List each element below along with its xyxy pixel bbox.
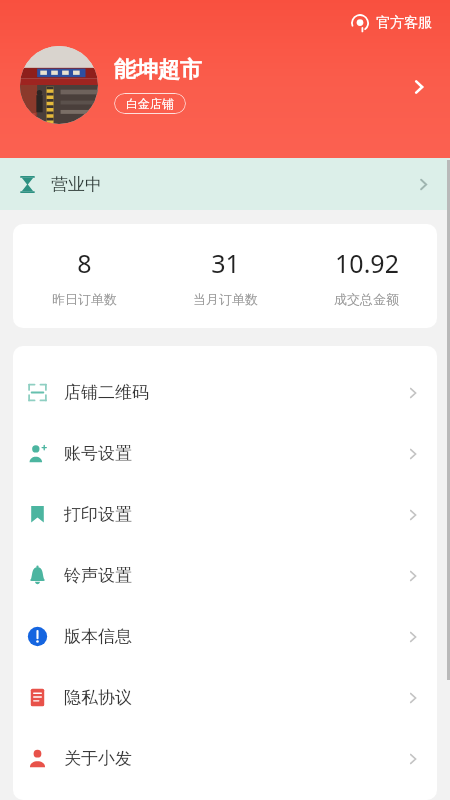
staticText: 关于小发	[64, 748, 132, 769]
staticText: 昨日订单数	[52, 291, 117, 307]
staticText: 官方客服	[376, 14, 432, 32]
staticText: 10.92	[335, 246, 399, 280]
button[interactable]: 隐私协议	[13, 667, 437, 728]
button[interactable]: 版本信息	[13, 606, 437, 667]
button[interactable]: 打印设置	[13, 484, 437, 545]
button[interactable]: 官方客服	[346, 11, 436, 35]
staticText: 8	[77, 246, 92, 280]
staticText: 营业中	[51, 174, 102, 195]
staticText: 账号设置	[64, 443, 132, 464]
button[interactable]: 8	[13, 224, 437, 328]
staticText: 隐私协议	[64, 687, 132, 708]
button[interactable]: 白金店铺	[114, 93, 186, 114]
button[interactable]: 关于小发	[13, 728, 437, 789]
staticText: 打印设置	[64, 504, 132, 525]
button[interactable]: 营业中	[0, 158, 450, 210]
button[interactable]: 店铺详情	[402, 70, 436, 104]
button[interactable]: 店铺二维码	[13, 362, 437, 423]
button[interactable]: 店铺头像	[20, 46, 98, 124]
staticText: 白金店铺	[126, 96, 174, 111]
staticText: 当月订单数	[193, 291, 258, 307]
staticText: 铃声设置	[64, 565, 132, 586]
button[interactable]: 铃声设置	[13, 545, 437, 606]
button[interactable]: 账号设置	[13, 423, 437, 484]
staticText: 31	[211, 246, 240, 280]
staticText: 店铺二维码	[64, 382, 149, 403]
staticText: 能坤超市	[114, 56, 202, 84]
staticText: 成交总金额	[334, 291, 399, 307]
staticText: 版本信息	[64, 626, 132, 647]
